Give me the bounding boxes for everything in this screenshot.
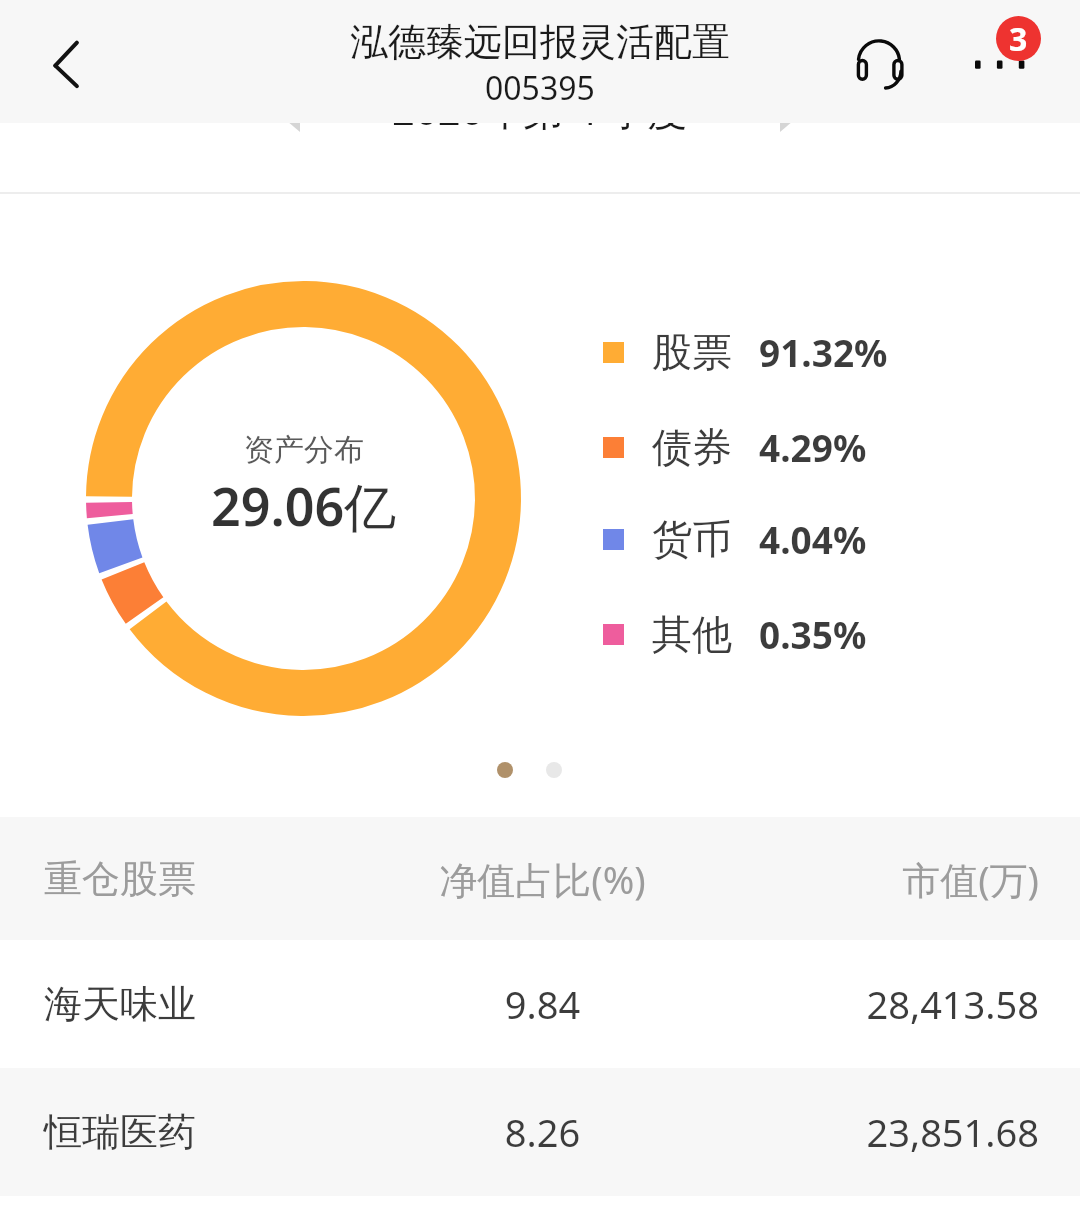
staticText: 2020年第 4 季度 <box>392 82 688 137</box>
staticText: 4.29% <box>759 422 867 472</box>
button[interactable]: 货币 <box>603 514 867 564</box>
staticText: 货币 <box>652 514 732 564</box>
staticText: 股票 <box>652 327 732 377</box>
button[interactable]: 其他 <box>603 609 867 659</box>
button[interactable]: 恒瑞医药 <box>0 1068 1080 1196</box>
staticText: 29.06亿 <box>211 470 397 541</box>
button[interactable]: Page 1 <box>497 762 513 778</box>
staticText: 3 <box>1009 17 1028 61</box>
staticText: 海天味业 <box>44 980 380 1028</box>
button[interactable]: Back <box>14 18 102 106</box>
staticText: 005395 <box>485 66 595 110</box>
button[interactable]: 股票 <box>603 327 888 377</box>
staticText: 91.32% <box>759 327 888 377</box>
staticText: 重仓股票 <box>44 855 380 903</box>
staticText: 23,851.68 <box>705 1106 1039 1158</box>
button[interactable]: Previous quarter <box>262 101 326 165</box>
button[interactable]: Next quarter <box>755 101 819 165</box>
staticText: 其他 <box>652 609 732 659</box>
button[interactable]: Page 2 <box>546 762 562 778</box>
staticText: 9.84 <box>380 978 705 1030</box>
staticText: 债券 <box>652 422 732 472</box>
staticText: 恒瑞医药 <box>44 1108 380 1156</box>
staticText: 资产分布 <box>244 431 364 469</box>
button[interactable]: 海天味业 <box>0 940 1080 1068</box>
button[interactable]: 债券 <box>603 422 867 472</box>
staticText: 28,413.58 <box>705 978 1039 1030</box>
staticText: 4.04% <box>759 514 867 564</box>
staticText: 净值占比(%) <box>380 853 705 905</box>
button[interactable]: More options <box>955 6 1047 98</box>
button[interactable]: Customer service <box>834 15 926 107</box>
staticText: 8.26 <box>380 1106 705 1158</box>
staticText: 市值(万) <box>705 853 1039 905</box>
staticText: 0.35% <box>759 609 867 659</box>
staticText: 泓德臻远回报灵活配置 <box>350 18 730 66</box>
